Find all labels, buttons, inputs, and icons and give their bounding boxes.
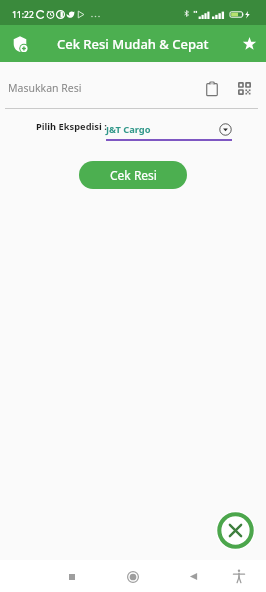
button[interactable]: Scan QR code (232, 76, 257, 101)
button[interactable]: J&T Cargo (106, 118, 232, 140)
staticText: Cek Resi (110, 167, 157, 183)
staticText: Pilih Ekspedisi : (36, 120, 107, 133)
button[interactable]: App logo (8, 32, 32, 56)
button[interactable]: Accessibility (225, 562, 253, 590)
staticText: Masukkan Resi (8, 81, 82, 95)
staticText: J&T Cargo (106, 123, 151, 136)
button[interactable]: Back (179, 562, 207, 590)
button[interactable]: Home (119, 563, 147, 591)
button[interactable]: Favorite (237, 32, 261, 56)
button[interactable]: Paste from clipboard (199, 76, 224, 101)
button[interactable]: Close (216, 511, 255, 550)
staticText: Cek Resi Mudah & Cepat (57, 35, 209, 53)
button[interactable]: Recent apps (58, 563, 86, 591)
button[interactable]: Cek Resi (79, 161, 187, 189)
staticText: 11:22 (12, 9, 34, 21)
